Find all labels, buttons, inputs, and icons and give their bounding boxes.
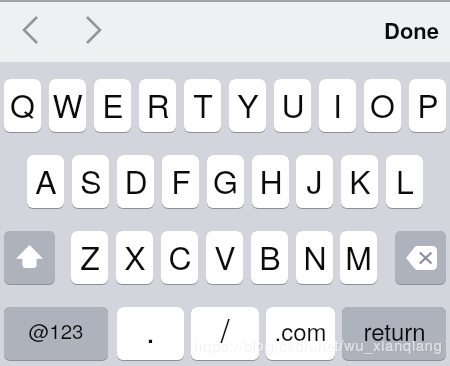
staticText: G	[213, 157, 238, 203]
button[interactable]: return	[342, 307, 446, 360]
button[interactable]: /	[191, 307, 259, 360]
button[interactable]: Y	[229, 79, 266, 132]
staticText: S	[80, 157, 102, 203]
staticText: H	[259, 157, 283, 203]
staticText: T	[193, 81, 213, 127]
button[interactable]: T	[184, 79, 221, 132]
button[interactable]: O	[364, 79, 401, 132]
button[interactable]: Previous field	[9, 9, 51, 51]
staticText: A	[35, 157, 57, 203]
button[interactable]: Q	[4, 79, 41, 132]
staticText: B	[259, 233, 281, 279]
button[interactable]: C	[161, 231, 198, 284]
staticText: @123	[28, 315, 84, 344]
button[interactable]: Z	[71, 231, 108, 284]
staticText: M	[345, 233, 372, 279]
button[interactable]: A	[27, 155, 64, 208]
staticText: W	[52, 81, 83, 127]
staticText: Q	[10, 81, 35, 127]
button[interactable]: E	[94, 79, 131, 132]
button[interactable]: Shift	[4, 231, 55, 284]
button[interactable]: U	[274, 79, 311, 132]
staticText: L	[396, 157, 414, 203]
button[interactable]: D	[117, 155, 154, 208]
button[interactable]: Done	[377, 9, 447, 51]
button[interactable]: @123	[4, 307, 108, 360]
staticText: J	[306, 157, 323, 203]
staticText: .	[146, 307, 155, 352]
button[interactable]: I	[319, 79, 356, 132]
staticText: /	[220, 307, 230, 352]
staticText: Y	[237, 81, 259, 127]
button[interactable]: P	[409, 79, 446, 132]
button[interactable]: .com	[266, 307, 335, 360]
staticText: D	[124, 157, 148, 203]
button[interactable]: M	[340, 231, 377, 284]
staticText: .com	[274, 313, 327, 347]
button[interactable]: X	[116, 231, 153, 284]
button[interactable]: N	[296, 231, 333, 284]
button[interactable]: H	[252, 155, 289, 208]
button[interactable]: Next field	[72, 9, 114, 51]
staticText: K	[349, 157, 371, 203]
button[interactable]: R	[139, 79, 176, 132]
staticText: F	[171, 157, 191, 203]
button[interactable]: V	[206, 231, 243, 284]
staticText: O	[370, 81, 395, 127]
staticText: I	[333, 81, 342, 127]
staticText: R	[146, 81, 170, 127]
button[interactable]: W	[49, 79, 86, 132]
staticText: V	[214, 233, 236, 279]
button[interactable]: B	[251, 231, 288, 284]
button[interactable]: F	[162, 155, 199, 208]
staticText: Z	[80, 233, 100, 279]
staticText: U	[281, 81, 305, 127]
staticText: https://blog.csdn.net/wu_xianqiang	[193, 334, 443, 355]
staticText: E	[102, 81, 124, 127]
staticText: return	[363, 313, 426, 347]
staticText: N	[303, 233, 327, 279]
button[interactable]: L	[386, 155, 423, 208]
button[interactable]: Backspace	[395, 231, 446, 284]
staticText: C	[168, 233, 192, 279]
staticText: X	[124, 233, 146, 279]
button[interactable]: S	[72, 155, 109, 208]
staticText: P	[417, 81, 439, 127]
button[interactable]: .	[117, 307, 184, 360]
staticText: https://blog.csdn.net/wu_xianqiang	[194, 335, 444, 356]
staticText: Done	[384, 14, 440, 46]
button[interactable]: G	[207, 155, 244, 208]
button[interactable]: J	[296, 155, 333, 208]
button[interactable]: K	[341, 155, 378, 208]
